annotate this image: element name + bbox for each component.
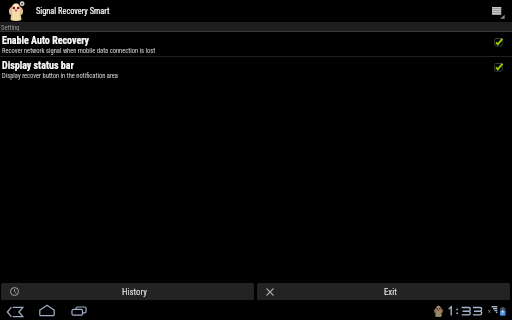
staticText: Signal Recovery Smart (36, 6, 110, 16)
button[interactable]: History (1, 283, 254, 300)
button[interactable]: More options (486, 3, 508, 19)
button[interactable]: Exit (257, 283, 510, 300)
staticText: Enable Auto Recovery (2, 35, 90, 47)
staticText: Exit (384, 287, 397, 297)
button[interactable]: Back (7, 307, 23, 317)
staticText: Display recover button in the notificati… (2, 72, 118, 80)
button[interactable]: Enable Auto Recovery (0, 32, 512, 56)
button[interactable]: Display status bar (0, 57, 512, 82)
button[interactable]: Home (39, 305, 55, 316)
button[interactable]: Recent apps (71, 306, 87, 316)
staticText: History (122, 287, 147, 297)
staticText: Setting (1, 24, 20, 32)
staticText: Display status bar (2, 60, 74, 72)
staticText: Recover network signal when mobile data … (2, 47, 156, 55)
